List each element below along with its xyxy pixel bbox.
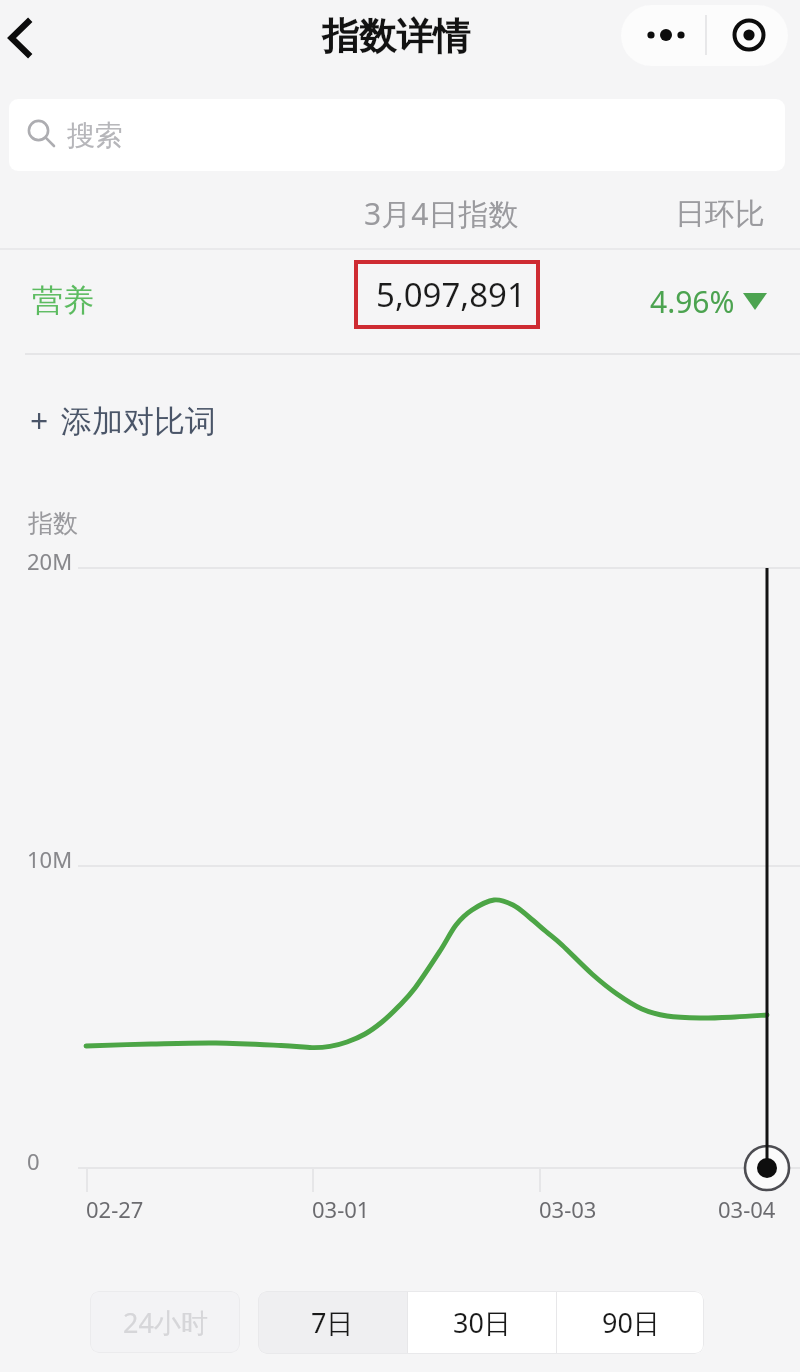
staticText: 0 (27, 1146, 40, 1176)
button[interactable]: 24小时 (90, 1291, 240, 1353)
staticText: 03-01 (312, 1194, 370, 1224)
button[interactable]: 90日 (557, 1291, 704, 1354)
staticText: 营养 (32, 281, 94, 320)
staticText: 指数 (28, 508, 78, 539)
staticText: 3月4日指数 (364, 193, 519, 234)
staticText: 4.96% (650, 281, 735, 322)
staticText: 30日 (453, 1304, 511, 1341)
staticText: 10M (27, 844, 73, 874)
staticText: 7日 (311, 1304, 354, 1341)
staticText: 24小时 (123, 1304, 208, 1341)
staticText: 03-03 (539, 1194, 597, 1224)
staticText: 5,097,891 (376, 272, 526, 317)
button[interactable]: 7日 (258, 1291, 407, 1354)
staticText: 指数详情 (322, 13, 470, 60)
button[interactable]: Back (0, 0, 62, 72)
staticText: 搜索 (67, 118, 123, 153)
button[interactable]: 30日 (408, 1291, 556, 1354)
staticText: 添加对比词 (61, 402, 216, 441)
staticText: 02-27 (86, 1194, 144, 1224)
button[interactable]: 搜索 (9, 99, 785, 171)
button[interactable]: + (30, 391, 216, 451)
staticText: 03-04 (718, 1194, 776, 1224)
staticText: 20M (27, 546, 73, 576)
staticText: + (30, 399, 49, 443)
staticText: 日环比 (675, 195, 765, 233)
button[interactable]: More options (621, 5, 788, 66)
staticText: 90日 (602, 1304, 660, 1341)
